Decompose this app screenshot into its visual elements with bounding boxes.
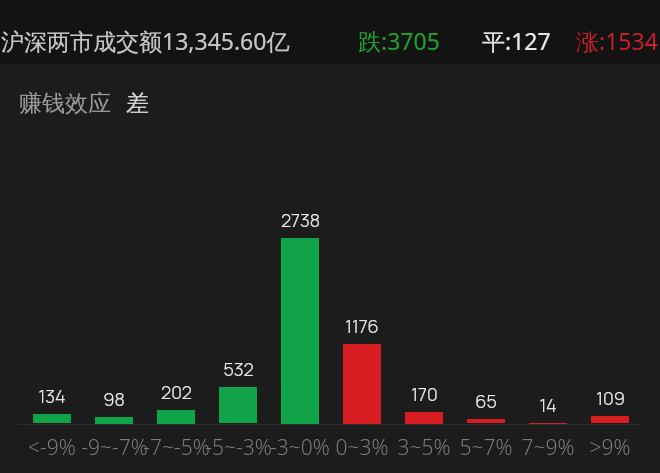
staticText: -9~-7% [81, 433, 148, 462]
staticText: 差 [126, 89, 149, 118]
staticText: 98 [103, 387, 125, 412]
staticText: <-9% [28, 433, 76, 462]
staticText: 14 [539, 393, 557, 418]
staticText: 1176 [345, 314, 379, 339]
button[interactable]: 赚钱效应 [19, 89, 111, 118]
staticText: 3~5% [397, 433, 451, 462]
staticText: 0~3% [335, 433, 389, 462]
staticText: 65 [475, 389, 497, 414]
staticText: -5~-3% [205, 433, 272, 462]
staticText: 202 [161, 380, 192, 405]
staticText: 平:127 [482, 25, 551, 56]
staticText: 532 [223, 357, 254, 382]
staticText: 跌:3705 [358, 25, 440, 56]
staticText: 赚钱效应 [19, 89, 111, 118]
staticText: 涨:1534 [576, 25, 658, 56]
staticText: 109 [596, 386, 625, 411]
staticText: -3~0% [270, 433, 330, 462]
staticText: 沪深两市成交额13,345.60亿 [1, 25, 290, 56]
staticText: >9% [589, 433, 631, 462]
staticText: 7~9% [521, 433, 575, 462]
button[interactable]: Market turnover summary [0, 0, 660, 64]
staticText: 5~7% [459, 433, 513, 462]
staticText: 134 [38, 384, 66, 409]
staticText: 170 [411, 382, 438, 407]
staticText: 2738 [281, 208, 320, 233]
staticText: -7~-5% [143, 433, 210, 462]
